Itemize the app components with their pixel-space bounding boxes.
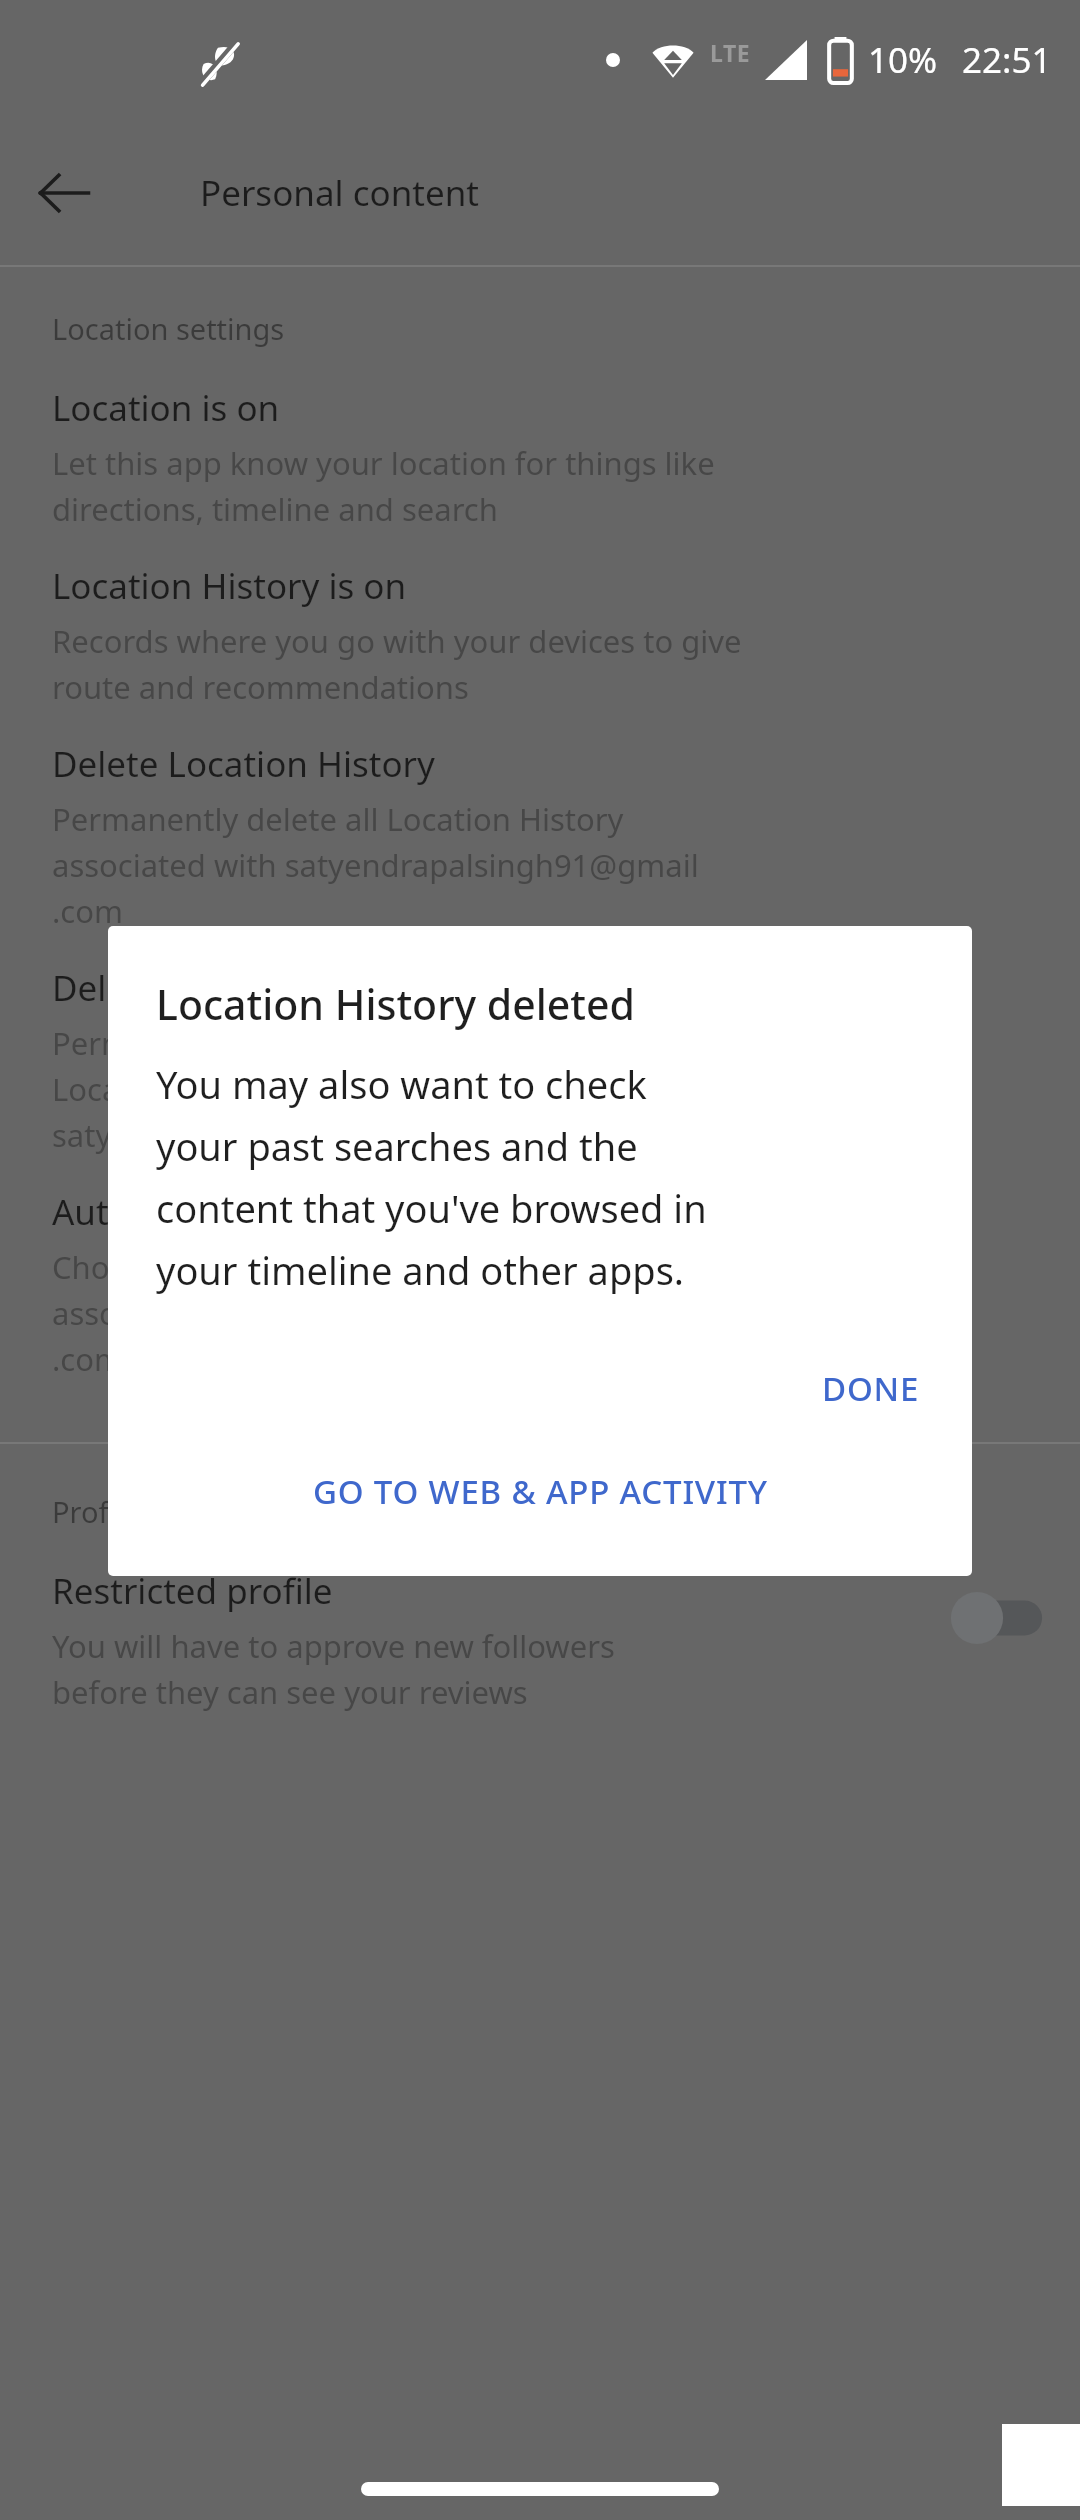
button[interactable]: Automatically delete Location History — [0, 1188, 1080, 1412]
staticText: Delete Location History range — [52, 964, 541, 1012]
button[interactable]: Back — [26, 155, 102, 231]
staticText: GO TO WEB & APP ACTIVITY — [313, 1469, 768, 1514]
button[interactable]: Delete Location History range — [0, 964, 1080, 1188]
staticText: Choose to continuously delete Location H… — [52, 1246, 738, 1380]
staticText: Location History deleted — [156, 976, 636, 1032]
button[interactable]: DONE — [796, 1346, 946, 1431]
staticText: Location History is on — [52, 562, 407, 610]
staticText: Let this app know your location for thin… — [52, 442, 715, 530]
staticText: LTE — [710, 37, 751, 68]
staticText: Profile privacy — [52, 1492, 245, 1531]
staticText: 22:51 — [962, 36, 1052, 84]
staticText: Location settings — [52, 309, 285, 348]
staticText: 10% — [868, 36, 938, 84]
staticText: Permanently delete a selected range of L… — [52, 1022, 622, 1156]
staticText: Location is on — [52, 384, 280, 432]
staticText: Delete Location History — [52, 740, 435, 788]
staticText: Personal content — [200, 169, 479, 217]
staticText: Records where you go with your devices t… — [52, 620, 742, 708]
staticText: DONE — [822, 1366, 920, 1411]
button[interactable]: Location is on — [0, 384, 1080, 562]
button[interactable]: GO TO WEB & APP ACTIVITY — [287, 1449, 794, 1534]
staticText: You may also want to check your past sea… — [156, 1058, 707, 1296]
button[interactable]: Delete Location History — [0, 740, 1080, 964]
staticText: Automatically delete Location History — [52, 1188, 665, 1236]
staticText: You will have to approve new followers b… — [52, 1625, 615, 1713]
button[interactable]: Location History is on — [0, 562, 1080, 740]
staticText: Permanently delete all Location History … — [52, 798, 699, 932]
button[interactable]: Restricted profile — [0, 1567, 1080, 1713]
button[interactable]: Restricted profile toggle — [948, 1589, 1044, 1647]
staticText: Restricted profile — [52, 1567, 333, 1615]
